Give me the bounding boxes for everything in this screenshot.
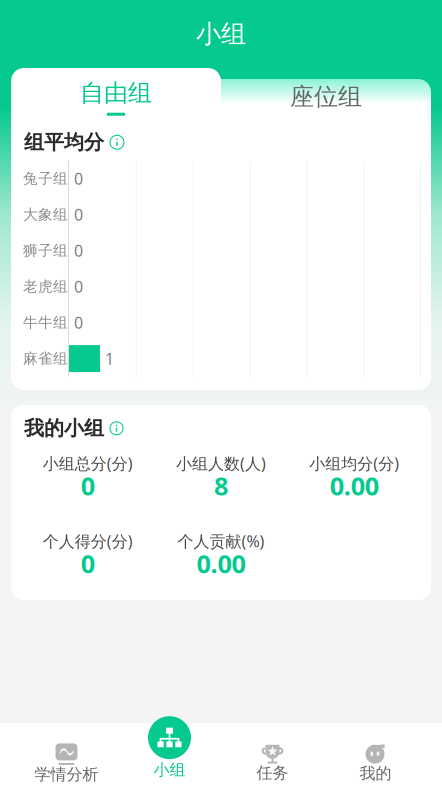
staticText: 自由组	[80, 78, 152, 108]
staticText: 小组	[196, 18, 246, 49]
staticText: 个人贡献(%)	[177, 530, 264, 552]
staticText: 小组总分(分)	[43, 453, 133, 474]
button[interactable]: 学情分析	[15, 730, 118, 785]
staticText: 座位组	[290, 82, 362, 111]
staticText: 0.00	[196, 547, 245, 580]
staticText: 牛牛组	[23, 314, 68, 332]
staticText: 0	[74, 312, 83, 333]
staticText: 老虎组	[23, 278, 68, 296]
button[interactable]: 我的	[324, 731, 427, 784]
staticText: 大象组	[23, 206, 68, 224]
button[interactable]: 小组	[118, 726, 221, 789]
staticText: 0	[74, 240, 83, 261]
staticText: 0	[74, 276, 83, 297]
button[interactable]: 自由组	[11, 68, 221, 120]
staticText: 小组均分(分)	[309, 453, 399, 474]
staticText: 任务	[256, 763, 288, 783]
staticText: 0	[81, 547, 95, 580]
staticText: 8	[214, 469, 228, 502]
staticText: 1	[105, 348, 114, 369]
staticText: 麻雀组	[23, 350, 68, 368]
staticText: 0	[74, 168, 83, 189]
staticText: 0.00	[330, 469, 379, 502]
staticText: 个人得分(分)	[43, 530, 133, 552]
staticText: 我的	[359, 764, 391, 783]
staticText: 组平均分	[24, 130, 104, 155]
staticText: 我的小组	[24, 416, 104, 441]
button[interactable]: 座位组	[221, 68, 431, 120]
staticText: 兔子组	[23, 170, 68, 188]
staticText: 小组	[153, 760, 185, 780]
staticText: 狮子组	[23, 242, 68, 260]
button[interactable]: 任务	[221, 731, 324, 784]
staticText: 小组人数(人)	[176, 453, 266, 474]
staticText: 0	[74, 204, 83, 225]
staticText: 学情分析	[34, 765, 98, 784]
staticText: 0	[81, 469, 95, 502]
